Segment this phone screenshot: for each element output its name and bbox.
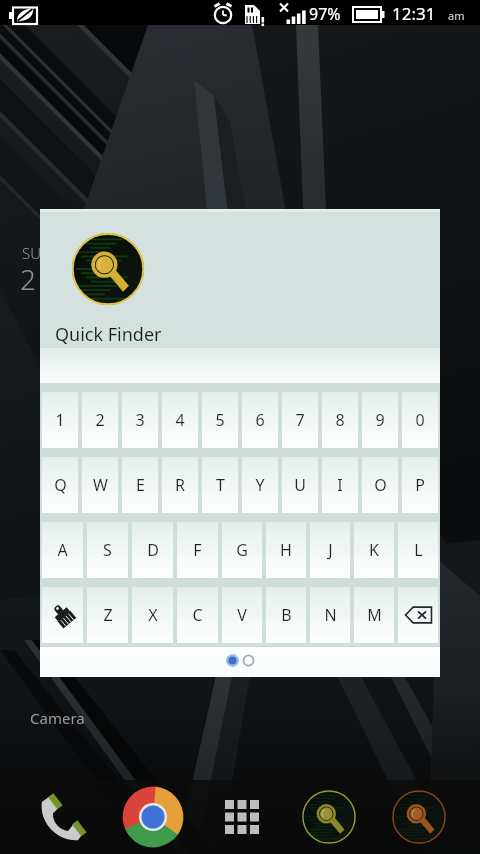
button[interactable]: I bbox=[322, 457, 358, 513]
staticText: SU bbox=[22, 243, 42, 263]
button[interactable]: Phone bbox=[32, 788, 90, 846]
staticText: J bbox=[328, 539, 333, 561]
button[interactable]: Q bbox=[42, 457, 78, 513]
button[interactable]: Quick Finder bbox=[300, 788, 358, 846]
staticText: 97% bbox=[309, 3, 341, 25]
button[interactable]: P bbox=[402, 457, 438, 513]
button[interactable]: 1 bbox=[42, 392, 78, 448]
staticText: I bbox=[337, 474, 343, 496]
staticText: 7 bbox=[295, 409, 305, 431]
button[interactable]: 9 bbox=[362, 392, 398, 448]
button[interactable]: E bbox=[122, 457, 158, 513]
staticText: A bbox=[57, 539, 68, 561]
button[interactable]: F bbox=[177, 522, 218, 578]
button[interactable]: Y bbox=[242, 457, 278, 513]
button[interactable]: R bbox=[162, 457, 198, 513]
button[interactable]: W bbox=[82, 457, 118, 513]
button[interactable]: N bbox=[310, 587, 350, 643]
staticText: 3 bbox=[135, 409, 145, 431]
button[interactable]: L bbox=[398, 522, 438, 578]
staticText: X bbox=[148, 604, 158, 626]
button[interactable]: Z bbox=[87, 587, 128, 643]
button[interactable]: C bbox=[177, 587, 218, 643]
button[interactable]: All apps bbox=[216, 791, 268, 843]
staticText: Quick Finder bbox=[55, 322, 162, 347]
staticText: H bbox=[280, 539, 292, 561]
button[interactable]: B bbox=[266, 587, 306, 643]
button[interactable]: 5 bbox=[202, 392, 238, 448]
button[interactable] bbox=[40, 647, 440, 677]
staticText: M bbox=[367, 604, 382, 626]
button[interactable] bbox=[40, 348, 440, 392]
staticText: Y bbox=[255, 474, 265, 496]
staticText: T bbox=[216, 474, 225, 496]
button[interactable]: V bbox=[222, 587, 262, 643]
staticText: am bbox=[448, 8, 465, 23]
button[interactable]: 0 bbox=[402, 392, 438, 448]
staticText: 6 bbox=[255, 409, 265, 431]
button[interactable]: D bbox=[132, 522, 173, 578]
button[interactable]: U bbox=[282, 457, 318, 513]
staticText: F bbox=[193, 539, 202, 561]
staticText: 4 bbox=[175, 409, 185, 431]
staticText: Q bbox=[54, 474, 67, 496]
staticText: Z bbox=[103, 604, 113, 626]
button[interactable]: Chrome bbox=[122, 786, 184, 848]
button[interactable]: T bbox=[202, 457, 238, 513]
button[interactable]: M bbox=[354, 587, 394, 643]
staticText: B bbox=[281, 604, 292, 626]
staticText: 8 bbox=[335, 409, 345, 431]
staticText: 5 bbox=[215, 409, 225, 431]
staticText: 0 bbox=[415, 409, 425, 431]
staticText: 12:31 bbox=[392, 2, 436, 25]
staticText: S bbox=[103, 539, 112, 561]
staticText: E bbox=[136, 474, 145, 496]
button[interactable]: A bbox=[42, 522, 83, 578]
staticText: 2 bbox=[95, 409, 105, 431]
button[interactable]: H bbox=[266, 522, 306, 578]
button[interactable]: 3 bbox=[122, 392, 158, 448]
staticText: G bbox=[236, 539, 248, 561]
button[interactable]: X bbox=[132, 587, 173, 643]
staticText: N bbox=[324, 604, 337, 626]
staticText: W bbox=[93, 474, 108, 496]
staticText: K bbox=[369, 539, 379, 561]
staticText: V bbox=[237, 604, 247, 626]
button[interactable]: 8 bbox=[322, 392, 358, 448]
button[interactable]: S bbox=[87, 522, 128, 578]
button[interactable]: O bbox=[362, 457, 398, 513]
button[interactable]: Quick Finder app icon bbox=[69, 230, 147, 308]
staticText: U bbox=[294, 474, 306, 496]
staticText: 2 bbox=[20, 260, 36, 298]
staticText: 9 bbox=[375, 409, 385, 431]
staticText: 1 bbox=[55, 409, 65, 431]
button[interactable]: Clear bbox=[42, 587, 83, 643]
staticText: C bbox=[192, 604, 203, 626]
button[interactable]: Finder orange bbox=[390, 788, 448, 846]
staticText: P bbox=[415, 474, 425, 496]
staticText: O bbox=[374, 474, 387, 496]
button[interactable]: 4 bbox=[162, 392, 198, 448]
button[interactable]: K bbox=[354, 522, 394, 578]
button[interactable]: Backspace bbox=[398, 587, 438, 643]
button[interactable]: 7 bbox=[282, 392, 318, 448]
button[interactable]: 6 bbox=[242, 392, 278, 448]
staticText: D bbox=[147, 539, 159, 561]
button[interactable]: J bbox=[310, 522, 350, 578]
staticText: L bbox=[414, 539, 423, 561]
button[interactable]: G bbox=[222, 522, 262, 578]
staticText: Camera bbox=[30, 708, 85, 728]
button[interactable]: 2 bbox=[82, 392, 118, 448]
staticText: R bbox=[175, 474, 185, 496]
